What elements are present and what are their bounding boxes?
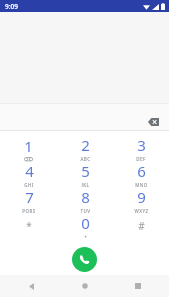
staticText: 1 bbox=[24, 136, 33, 156]
staticText: 7 bbox=[25, 187, 34, 207]
staticText: TUV bbox=[80, 208, 91, 213]
button[interactable]: 7 bbox=[0, 187, 57, 213]
button[interactable]: 2 bbox=[57, 135, 113, 161]
button[interactable]: 0 bbox=[57, 213, 113, 239]
button[interactable]: 3 bbox=[113, 135, 169, 161]
button[interactable]: 8 bbox=[57, 187, 113, 213]
staticText: 4 bbox=[25, 161, 34, 181]
staticText: 9 bbox=[137, 187, 146, 207]
staticText: # bbox=[138, 219, 145, 233]
staticText: 3 bbox=[137, 135, 146, 155]
staticText: MNO bbox=[135, 182, 148, 187]
staticText: DEF bbox=[136, 156, 146, 161]
button[interactable]: Back bbox=[18, 275, 44, 297]
button[interactable]: 6 bbox=[113, 161, 169, 187]
staticText: 2 bbox=[81, 135, 90, 155]
staticText: 8 bbox=[81, 187, 90, 207]
button[interactable]: 9 bbox=[113, 187, 169, 213]
staticText: WXYZ bbox=[134, 208, 149, 213]
button[interactable]: Backspace bbox=[143, 114, 163, 130]
button[interactable]: Recents bbox=[125, 275, 151, 297]
button[interactable]: 4 bbox=[0, 161, 57, 187]
staticText: + bbox=[84, 234, 88, 239]
staticText: GHI bbox=[24, 182, 34, 187]
staticText: 5 bbox=[81, 161, 90, 181]
staticText: * bbox=[26, 219, 32, 233]
button[interactable]: * bbox=[0, 213, 57, 239]
button[interactable]: 5 bbox=[57, 161, 113, 187]
staticText: 6 bbox=[137, 161, 146, 181]
staticText: 0 bbox=[81, 213, 90, 233]
staticText: 9:09 bbox=[5, 2, 18, 11]
staticText: JKL bbox=[81, 182, 90, 187]
button[interactable]: Call bbox=[72, 247, 97, 272]
button[interactable]: 1 bbox=[0, 135, 57, 161]
staticText: PQRS bbox=[22, 208, 36, 213]
button[interactable]: # bbox=[113, 213, 169, 239]
button[interactable]: Home bbox=[72, 275, 98, 297]
staticText: ABC bbox=[80, 156, 91, 161]
